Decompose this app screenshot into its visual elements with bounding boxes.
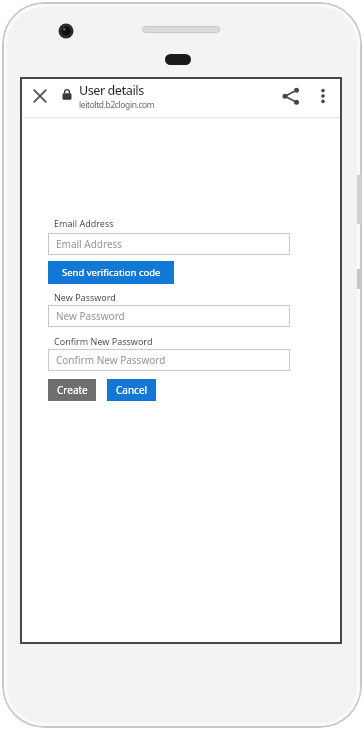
staticText: Send verification code: [62, 266, 161, 279]
button[interactable]: Cancel: [107, 379, 156, 401]
button[interactable]: Create: [48, 379, 96, 401]
button[interactable]: [278, 84, 302, 108]
staticText: User details: [79, 82, 144, 99]
staticText: New Password: [56, 309, 125, 323]
button[interactable]: New Password: [48, 305, 290, 327]
staticText: Cancel: [116, 383, 148, 397]
button[interactable]: Email Address: [48, 233, 290, 255]
button[interactable]: [28, 84, 52, 108]
staticText: Email Address: [54, 217, 114, 229]
staticText: New Password: [54, 291, 116, 303]
staticText: Email Address: [56, 237, 123, 251]
button[interactable]: Confirm New Password: [48, 349, 290, 371]
staticText: Confirm New Password: [54, 335, 153, 347]
button[interactable]: Send verification code: [48, 261, 174, 284]
staticText: Confirm New Password: [56, 353, 166, 367]
button[interactable]: [311, 84, 335, 108]
staticText: Create: [57, 383, 88, 397]
staticText: leitoltd.b2clogin.com: [79, 99, 155, 111]
